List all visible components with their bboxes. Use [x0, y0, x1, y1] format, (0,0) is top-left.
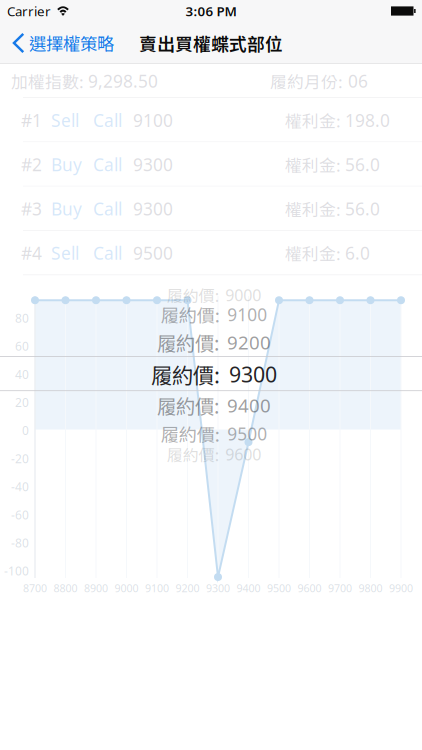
staticText: 9500	[267, 581, 291, 595]
staticText: 8700	[23, 581, 47, 595]
staticText: 9100	[145, 581, 169, 595]
staticText: 60	[15, 338, 29, 354]
staticText: 80	[15, 310, 29, 326]
staticText: #4	[21, 241, 42, 264]
staticText: 06	[348, 69, 368, 92]
staticText: 9300	[133, 153, 173, 176]
staticText: 權利金:	[285, 241, 341, 265]
staticText: 9000	[225, 284, 261, 306]
staticText: Sell	[51, 109, 79, 132]
staticText: 選擇權策略	[29, 30, 114, 56]
staticText: 權利金:	[285, 152, 341, 177]
staticText: Sell	[51, 241, 79, 264]
staticText: 9300	[229, 360, 277, 388]
staticText: 40	[15, 366, 29, 382]
staticText: -20	[11, 451, 29, 466]
staticText: 56.0	[345, 197, 380, 220]
button[interactable]: 選擇權策略	[0, 22, 122, 64]
staticText: 權利金:	[285, 108, 341, 132]
button[interactable]: #1	[0, 98, 422, 142]
staticText: 9100	[227, 303, 267, 326]
staticText: 9,298.50	[88, 69, 158, 92]
staticText: 6.0	[345, 241, 370, 264]
staticText: 9200	[175, 581, 199, 595]
staticText: 9400	[236, 581, 260, 595]
staticText: 9700	[328, 581, 352, 595]
staticText: 9500	[133, 241, 173, 264]
staticText: 9300	[133, 197, 173, 220]
button[interactable]: #4	[0, 231, 422, 275]
staticText: 9300	[206, 581, 230, 595]
staticText: 0	[22, 422, 29, 438]
staticText: Call	[93, 153, 122, 176]
staticText: 56.0	[345, 153, 380, 176]
staticText: 9800	[358, 581, 382, 595]
staticText: -60	[11, 507, 29, 523]
staticText: 3:06 PM	[185, 2, 236, 20]
staticText: -40	[11, 479, 29, 495]
staticText: Call	[93, 109, 122, 132]
staticText: Carrier	[7, 2, 51, 20]
staticText: 198.0	[345, 109, 390, 132]
staticText: 8800	[53, 581, 77, 595]
staticText: 履約價:	[151, 359, 220, 390]
button[interactable]: #3	[0, 187, 422, 231]
staticText: 權利金:	[285, 197, 341, 221]
staticText: 履約價:	[161, 420, 220, 447]
staticText: 9400	[227, 393, 271, 418]
staticText: Buy	[51, 197, 82, 220]
staticText: 履約價:	[167, 283, 219, 307]
staticText: Call	[93, 241, 122, 264]
staticText: 9200	[227, 330, 271, 355]
staticText: #1	[21, 109, 42, 132]
staticText: 9500	[227, 422, 267, 445]
staticText: #3	[21, 197, 42, 220]
staticText: 履約價:	[167, 443, 219, 466]
staticText: -100	[4, 563, 29, 579]
staticText: 20	[15, 394, 29, 410]
staticText: 9600	[297, 581, 321, 595]
staticText: 賣出買權蝶式部位	[139, 30, 283, 56]
staticText: 9000	[114, 581, 138, 595]
staticText: 9600	[225, 444, 261, 465]
staticText: 履約價:	[157, 328, 219, 356]
staticText: #2	[21, 153, 42, 176]
staticText: Call	[93, 197, 122, 220]
button[interactable]: #2	[0, 142, 422, 187]
staticText: 8900	[84, 581, 108, 595]
staticText: 9100	[133, 109, 173, 132]
staticText: 履約價:	[157, 391, 219, 419]
staticText: 履約月份:	[270, 69, 343, 93]
staticText: 9900	[389, 581, 413, 595]
staticText: -80	[11, 535, 29, 551]
staticText: 履約價:	[161, 301, 220, 328]
staticText: Buy	[51, 153, 82, 176]
staticText: 加權指數:	[11, 69, 84, 93]
